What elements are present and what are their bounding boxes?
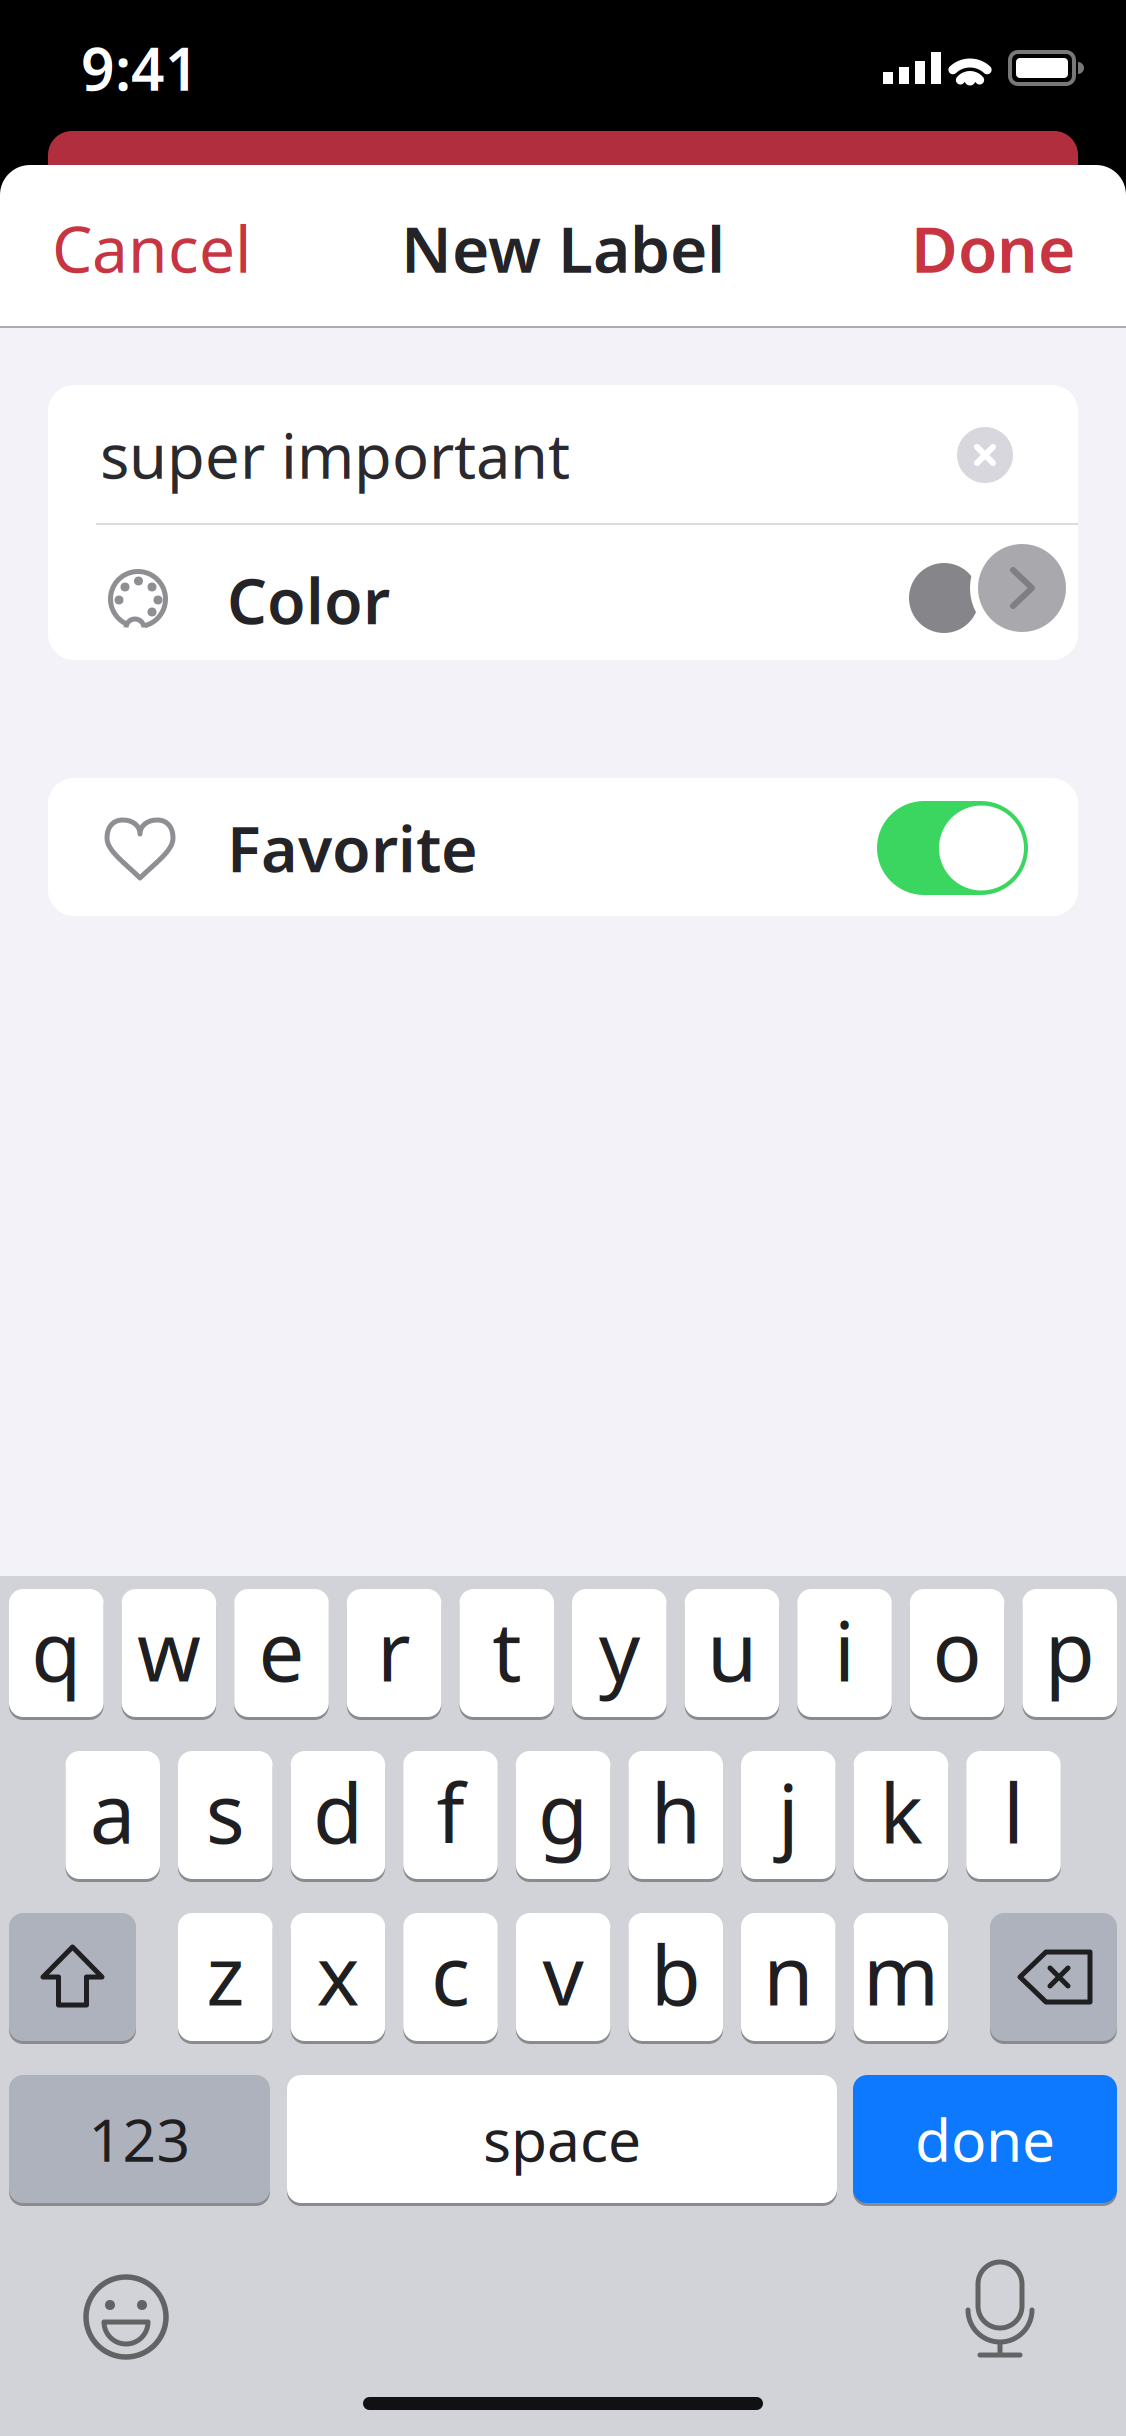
button[interactable]: g <box>516 1751 610 1879</box>
button[interactable]: w <box>122 1589 216 1717</box>
button[interactable]: l <box>966 1751 1061 1879</box>
staticText: s <box>206 1758 245 1866</box>
staticText: d <box>313 1758 363 1866</box>
button[interactable]: Emoji <box>76 2267 176 2367</box>
button[interactable]: Shift <box>9 1913 136 2041</box>
staticText: o <box>933 1596 982 1704</box>
staticText: i <box>834 1596 855 1704</box>
button[interactable]: f <box>403 1751 498 1879</box>
staticText: j <box>778 1758 799 1866</box>
button[interactable]: e <box>234 1589 329 1717</box>
button[interactable]: o <box>910 1589 1004 1717</box>
staticText: Favorite <box>227 806 478 890</box>
staticText: u <box>707 1596 757 1704</box>
staticText: h <box>651 1758 701 1866</box>
button[interactable]: Dictation <box>950 2262 1050 2372</box>
staticText: w <box>137 1596 201 1704</box>
staticText: g <box>538 1758 588 1866</box>
button[interactable]: Favorite <box>877 801 1028 895</box>
staticText: v <box>543 1920 584 2028</box>
button[interactable]: s <box>178 1751 273 1879</box>
button[interactable]: t <box>459 1589 554 1717</box>
staticText: Cancel <box>52 205 252 290</box>
button[interactable]: i <box>797 1589 892 1717</box>
button[interactable]: u <box>685 1589 779 1717</box>
staticText: space <box>483 2100 641 2178</box>
staticText: y <box>599 1596 640 1704</box>
staticText: c <box>431 1920 470 2028</box>
staticText: New Label <box>401 205 725 290</box>
staticText: 9:41 <box>81 29 199 107</box>
staticText: x <box>316 1920 359 2028</box>
staticText: p <box>1045 1596 1095 1704</box>
button[interactable]: n <box>741 1913 836 2041</box>
staticText: Done <box>911 205 1075 290</box>
button[interactable]: h <box>628 1751 723 1879</box>
button[interactable]: Color <box>48 525 1078 660</box>
staticText: t <box>492 1596 521 1704</box>
button[interactable]: p <box>1022 1589 1117 1717</box>
button[interactable]: c <box>403 1913 498 2041</box>
button[interactable]: b <box>628 1913 723 2041</box>
staticText: r <box>377 1596 411 1704</box>
staticText: 123 <box>88 2100 190 2178</box>
staticText: Color <box>227 558 390 642</box>
button[interactable]: j <box>741 1751 836 1879</box>
staticText: done <box>915 2100 1055 2178</box>
button[interactable]: 123 <box>9 2075 270 2203</box>
button[interactable]: r <box>347 1589 441 1717</box>
button[interactable]: m <box>854 1913 948 2041</box>
button[interactable]: space <box>287 2075 837 2203</box>
button[interactable]: z <box>178 1913 273 2041</box>
button[interactable]: Clear text <box>957 427 1013 483</box>
button[interactable]: Delete <box>990 1913 1117 2041</box>
button[interactable]: k <box>854 1751 948 1879</box>
staticText: a <box>90 1758 136 1866</box>
staticText: e <box>258 1596 304 1704</box>
staticText: l <box>1003 1758 1024 1866</box>
staticText: b <box>651 1920 701 2028</box>
button[interactable]: v <box>516 1913 610 2041</box>
button[interactable]: a <box>65 1751 160 1879</box>
staticText: q <box>31 1596 81 1704</box>
staticText: n <box>763 1920 813 2028</box>
staticText: f <box>436 1758 464 1866</box>
button[interactable]: Done <box>855 213 1075 283</box>
button[interactable]: done <box>853 2075 1117 2203</box>
staticText: k <box>879 1758 922 1866</box>
button[interactable]: q <box>9 1589 104 1717</box>
button[interactable]: Cancel <box>52 213 272 283</box>
staticText: m <box>863 1920 939 2028</box>
staticText: super important <box>100 414 570 496</box>
button[interactable]: y <box>572 1589 667 1717</box>
button[interactable]: x <box>291 1913 385 2041</box>
button[interactable]: d <box>291 1751 385 1879</box>
staticText: z <box>206 1920 244 2028</box>
